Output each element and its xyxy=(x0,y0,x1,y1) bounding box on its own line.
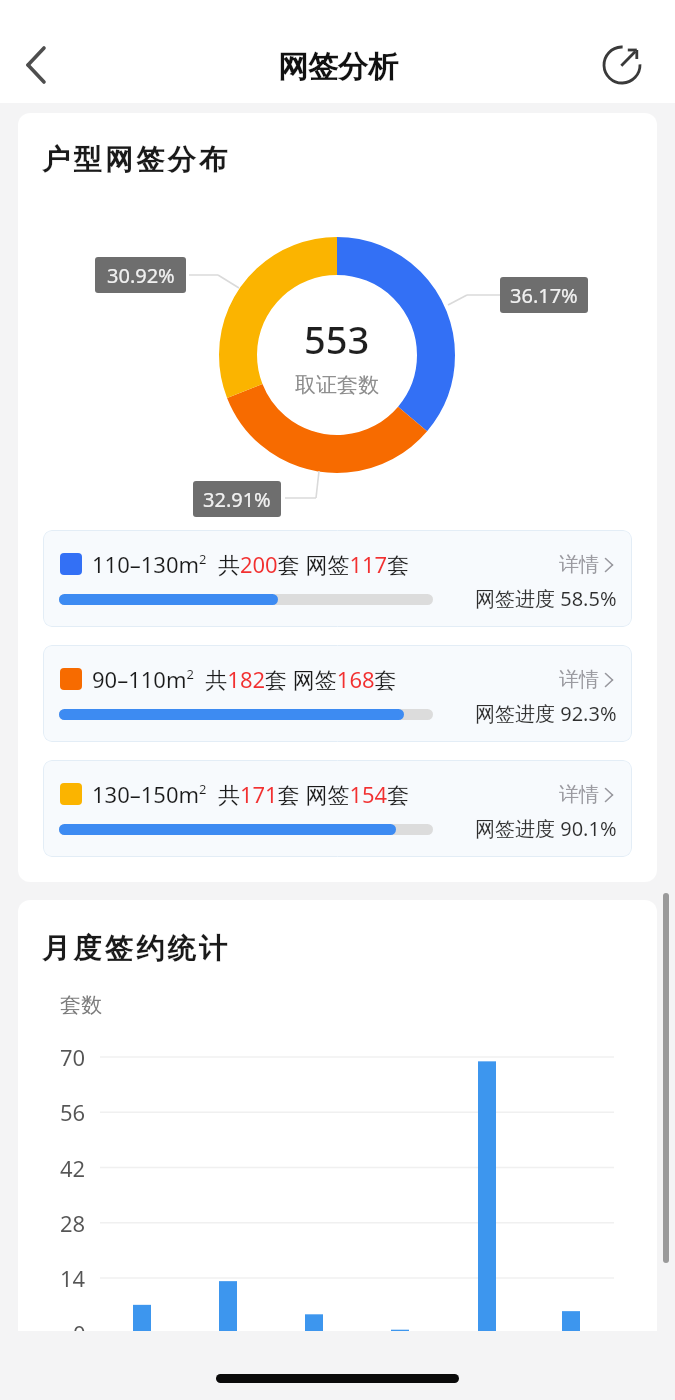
staticText: 14 xyxy=(60,1263,86,1293)
staticText: 月度签约统计 xyxy=(42,931,231,966)
staticText: 70 xyxy=(60,1042,86,1072)
button[interactable]: 详情 xyxy=(559,552,618,577)
staticText: 户型网签分布 xyxy=(42,142,231,177)
staticText: 30.92% xyxy=(107,262,175,289)
button[interactable]: Back xyxy=(0,37,56,93)
staticText: 56 xyxy=(60,1097,86,1127)
staticText: 36.17% xyxy=(510,282,578,309)
button[interactable]: 90–110m2 共182套 网签168套 xyxy=(43,645,632,742)
staticText: 28 xyxy=(60,1208,86,1238)
staticText: 网签进度 58.5% xyxy=(475,585,617,612)
button[interactable]: 详情 xyxy=(559,667,618,692)
staticText: 详情 xyxy=(559,667,599,692)
staticText: 网签进度 90.1% xyxy=(475,815,617,842)
staticText: 0 xyxy=(73,1318,86,1331)
button[interactable]: 详情 xyxy=(559,782,618,807)
staticText: 网签进度 92.3% xyxy=(475,700,617,727)
staticText: 110–130m2 共200套 网签117套 xyxy=(92,549,410,579)
button[interactable]: 130–150m2 共171套 网签154套 xyxy=(43,760,632,857)
staticText: 详情 xyxy=(559,782,599,807)
button[interactable]: 110–130m2 共200套 网签117套 xyxy=(43,530,632,627)
staticText: 网签分析 xyxy=(278,48,398,86)
staticText: 详情 xyxy=(559,552,599,577)
staticText: 42 xyxy=(60,1153,86,1183)
staticText: 90–110m2 共182套 网签168套 xyxy=(92,664,397,694)
staticText: 套数 xyxy=(60,992,102,1018)
staticText: 取证套数 xyxy=(295,372,379,398)
staticText: 553 xyxy=(304,313,370,365)
button[interactable]: Share xyxy=(594,37,650,93)
staticText: 130–150m2 共171套 网签154套 xyxy=(92,779,410,809)
staticText: 32.91% xyxy=(203,486,271,513)
